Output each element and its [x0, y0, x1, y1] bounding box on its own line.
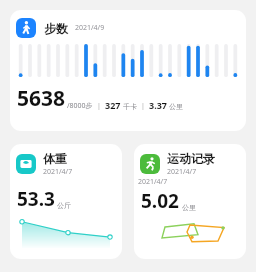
other: Steps — [16, 18, 36, 38]
other: Weight — [16, 154, 36, 174]
staticText: | — [97, 101, 101, 111]
staticText: 3.37 — [149, 99, 167, 111]
staticText: 2021/4/7 — [167, 167, 197, 177]
staticText: 体重 — [43, 151, 67, 166]
staticText: | — [141, 101, 145, 111]
staticText: 2021/4/7 — [43, 167, 73, 177]
staticText: 千卡 — [123, 102, 137, 111]
staticText: 公里 — [169, 102, 183, 111]
staticText: 运动记录 — [167, 151, 215, 166]
staticText: 327 — [105, 99, 121, 111]
staticText: 2021/4/9 — [75, 23, 105, 33]
staticText: 2021/4/7 — [138, 177, 168, 187]
staticText: 53.3 — [17, 186, 55, 212]
button[interactable]: Steps — [10, 10, 246, 131]
staticText: 步数 — [44, 21, 68, 36]
staticText: 公里 — [182, 203, 196, 212]
staticText: 5.02 — [141, 188, 179, 214]
staticText: 5638 — [17, 84, 66, 113]
button[interactable]: Exercise record — [134, 144, 246, 259]
other: Exercise record — [140, 154, 160, 174]
staticText: /8000步 — [67, 101, 93, 111]
button[interactable]: Weight — [10, 144, 122, 259]
staticText: 公斤 — [57, 201, 71, 210]
